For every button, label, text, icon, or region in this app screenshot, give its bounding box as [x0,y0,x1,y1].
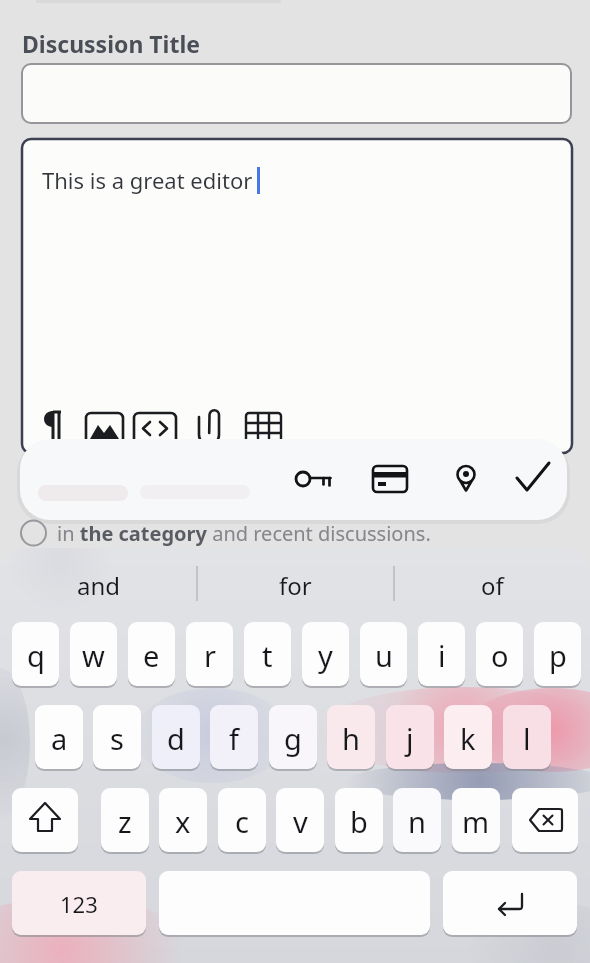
button[interactable]: a [35,705,83,771]
staticText: w [82,636,105,675]
button[interactable]: n [393,788,441,854]
staticText: l [523,719,531,758]
staticText: p [549,636,567,675]
button[interactable]: g [269,705,317,771]
staticText: b [350,802,368,841]
staticText: and [77,569,121,602]
staticText: u [375,636,393,675]
staticText: c [235,802,249,841]
button[interactable]: z [101,788,149,854]
button[interactable]: c [218,788,266,854]
button[interactable]: j [386,705,434,771]
button[interactable] [159,871,430,937]
button[interactable] [12,788,78,854]
staticText: for [279,569,312,602]
button[interactable]: t [244,622,291,688]
staticText: z [118,802,132,841]
staticText: v [293,802,308,841]
staticText: This is a great editor [42,165,253,195]
button[interactable]: q [12,622,59,688]
staticText: g [284,719,302,758]
staticText: r [204,636,216,675]
button[interactable]: b [335,788,383,854]
staticText: x [175,802,191,841]
button[interactable]: u [360,622,407,688]
staticText: of [481,569,504,602]
button[interactable]: i [418,622,465,688]
button[interactable]: This is a great editor [22,139,572,453]
button[interactable]: for [197,555,394,615]
button[interactable]: w [70,622,117,688]
button[interactable]: f [210,705,258,771]
button[interactable]: of [394,555,590,615]
button[interactable]: o [476,622,523,688]
staticText: d [167,719,185,758]
button[interactable]: and [0,555,197,615]
staticText: o [491,636,509,675]
staticText: k [460,719,476,758]
button[interactable]: k [444,705,492,771]
button[interactable]: d [152,705,200,771]
button[interactable]: v [276,788,324,854]
staticText: in the category and recent discussions. [57,520,431,547]
button[interactable] [512,788,578,854]
staticText: t [262,636,273,675]
staticText: s [110,719,124,758]
staticText: Discussion Title [22,28,201,59]
staticText: e [143,636,160,675]
staticText: f [229,719,239,758]
staticText: m [462,802,490,841]
staticText: j [406,719,414,758]
button[interactable]: h [327,705,375,771]
staticText: q [27,636,45,675]
button[interactable]: s [93,705,141,771]
button[interactable]: l [503,705,551,771]
button[interactable]: y [302,622,349,688]
button[interactable]: m [452,788,500,854]
button[interactable]: r [186,622,233,688]
button[interactable]: p [534,622,581,688]
button[interactable] [443,871,577,937]
button[interactable]: 123 [12,871,146,937]
staticText: h [342,719,360,758]
button[interactable]: in the category and recent discussions. [57,520,431,547]
staticText: 123 [60,889,98,919]
button[interactable] [20,439,567,520]
button[interactable]: x [159,788,207,854]
button[interactable]: e [128,622,175,688]
staticText: y [318,636,333,675]
button[interactable] [22,64,571,123]
staticText: a [51,719,68,758]
staticText: n [408,802,426,841]
staticText: i [438,636,446,675]
